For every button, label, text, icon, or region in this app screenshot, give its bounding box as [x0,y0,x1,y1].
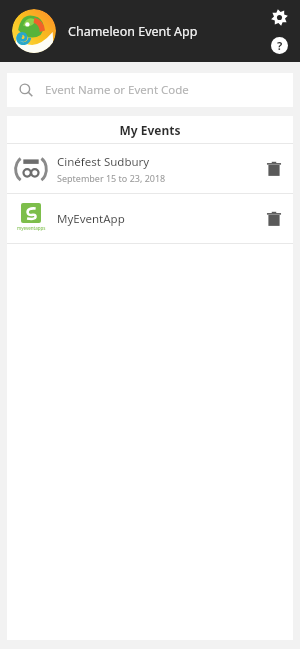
staticText: myeventapps [17,225,46,231]
button[interactable]: Delete MyEventApp [259,202,289,236]
staticText: Chameleon Event App [68,23,198,40]
button[interactable]: Cinéfest Sudbury [7,144,293,193]
staticText: September 15 to 23, 2018 [57,172,166,184]
button[interactable]: myeventapps [7,194,293,243]
staticText: ? [277,38,283,53]
button[interactable]: Settings [266,4,292,30]
button[interactable]: Event Name or Event Code [7,73,293,107]
staticText: My Events [119,122,181,138]
button[interactable]: Help [266,32,292,58]
button[interactable]: Delete Cinéfest Sudbury [259,152,289,186]
staticText: Event Name or Event Code [45,82,189,98]
staticText: Cinéfest Sudbury [57,154,150,170]
staticText: MyEventApp [57,211,125,227]
button[interactable]: App logo [12,9,56,53]
